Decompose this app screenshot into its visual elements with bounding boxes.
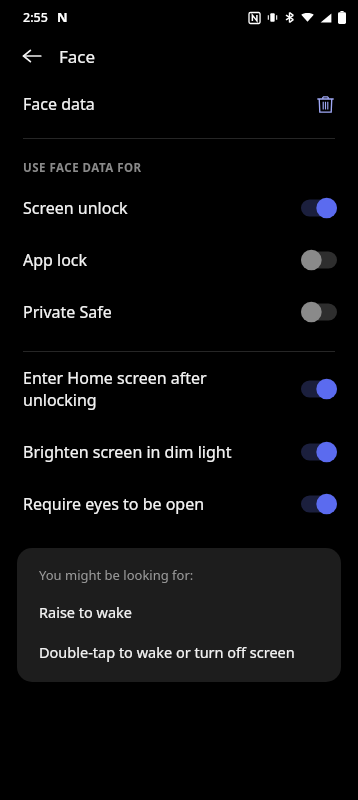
button[interactable]: Off	[301, 249, 337, 271]
staticText: USE FACE DATA FOR	[23, 160, 142, 176]
button[interactable]: Require eyes to be open	[0, 478, 358, 530]
button[interactable]: Enter Home screen after unlocking	[0, 352, 358, 426]
button[interactable]: Delete face data	[309, 88, 341, 120]
staticText: Brighten screen in dim light	[23, 441, 291, 463]
button[interactable]: Private Safe	[0, 286, 358, 338]
button[interactable]: Screen unlock	[0, 182, 358, 234]
staticText: Require eyes to be open	[23, 493, 291, 515]
staticText: Double-tap to wake or turn off screen	[39, 642, 295, 662]
button[interactable]: On	[301, 197, 337, 219]
button[interactable]: App lock	[0, 234, 358, 286]
staticText: N	[57, 8, 68, 26]
button[interactable]: On	[301, 441, 337, 463]
staticText: Enter Home screen after unlocking	[23, 367, 291, 411]
staticText: App lock	[23, 249, 291, 271]
button[interactable]: On	[301, 493, 337, 515]
staticText: Screen unlock	[23, 197, 291, 219]
button[interactable]: Raise to wake	[39, 602, 323, 622]
button[interactable]: Back	[14, 38, 50, 74]
button[interactable]: Brighten screen in dim light	[0, 426, 358, 478]
staticText: Face	[59, 45, 96, 68]
button[interactable]: Off	[301, 301, 337, 323]
button[interactable]: Face data	[0, 78, 358, 130]
staticText: 2:55	[23, 9, 48, 26]
staticText: Face data	[23, 93, 309, 115]
staticText: Private Safe	[23, 301, 291, 323]
button[interactable]: On	[301, 378, 337, 400]
staticText: You might be looking for:	[39, 566, 194, 584]
button[interactable]: Double-tap to wake or turn off screen	[39, 642, 323, 662]
staticText: Raise to wake	[39, 602, 133, 622]
